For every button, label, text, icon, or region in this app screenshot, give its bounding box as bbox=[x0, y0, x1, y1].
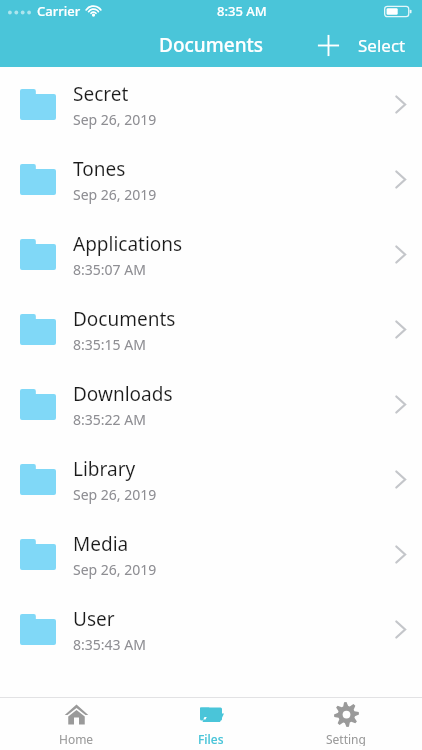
staticText: Home bbox=[59, 731, 94, 746]
button[interactable]: Files bbox=[152, 698, 270, 750]
staticText: Files bbox=[198, 731, 224, 746]
staticText: 8:35:07 AM bbox=[73, 260, 146, 279]
button[interactable]: Add bbox=[310, 27, 346, 63]
button[interactable]: Library bbox=[0, 442, 422, 517]
button[interactable]: Secret bbox=[0, 67, 422, 142]
staticText: Sep 26, 2019 bbox=[73, 110, 157, 129]
staticText: Documents bbox=[73, 306, 176, 332]
staticText: Documents bbox=[159, 32, 264, 58]
staticText: 8:35 AM bbox=[217, 2, 267, 20]
staticText: Carrier bbox=[37, 2, 81, 20]
staticText: Applications bbox=[73, 231, 183, 257]
staticText: 8:35:15 AM bbox=[73, 335, 146, 354]
staticText: Library bbox=[73, 456, 136, 482]
button[interactable]: Downloads bbox=[0, 367, 422, 442]
staticText: Downloads bbox=[73, 381, 173, 407]
staticText: Sep 26, 2019 bbox=[73, 185, 157, 204]
staticText: Tones bbox=[73, 156, 126, 182]
staticText: Sep 26, 2019 bbox=[73, 485, 157, 504]
staticText: Select bbox=[358, 34, 406, 57]
staticText: 8:35:22 AM bbox=[73, 410, 146, 429]
button[interactable]: Documents bbox=[153, 28, 270, 62]
staticText: Sep 26, 2019 bbox=[73, 560, 157, 579]
staticText: User bbox=[73, 606, 115, 632]
button[interactable]: Media bbox=[0, 517, 422, 592]
button[interactable]: Applications bbox=[0, 217, 422, 292]
staticText: Setting bbox=[326, 731, 366, 746]
button[interactable]: Documents bbox=[0, 292, 422, 367]
button[interactable]: Setting bbox=[287, 698, 405, 750]
button[interactable]: User bbox=[0, 592, 422, 667]
button[interactable]: Tones bbox=[0, 142, 422, 217]
button[interactable]: Select bbox=[354, 28, 410, 63]
staticText: Secret bbox=[73, 81, 129, 107]
button[interactable]: Home bbox=[17, 698, 135, 750]
staticText: Media bbox=[73, 531, 129, 557]
staticText: 8:35:43 AM bbox=[73, 635, 146, 654]
